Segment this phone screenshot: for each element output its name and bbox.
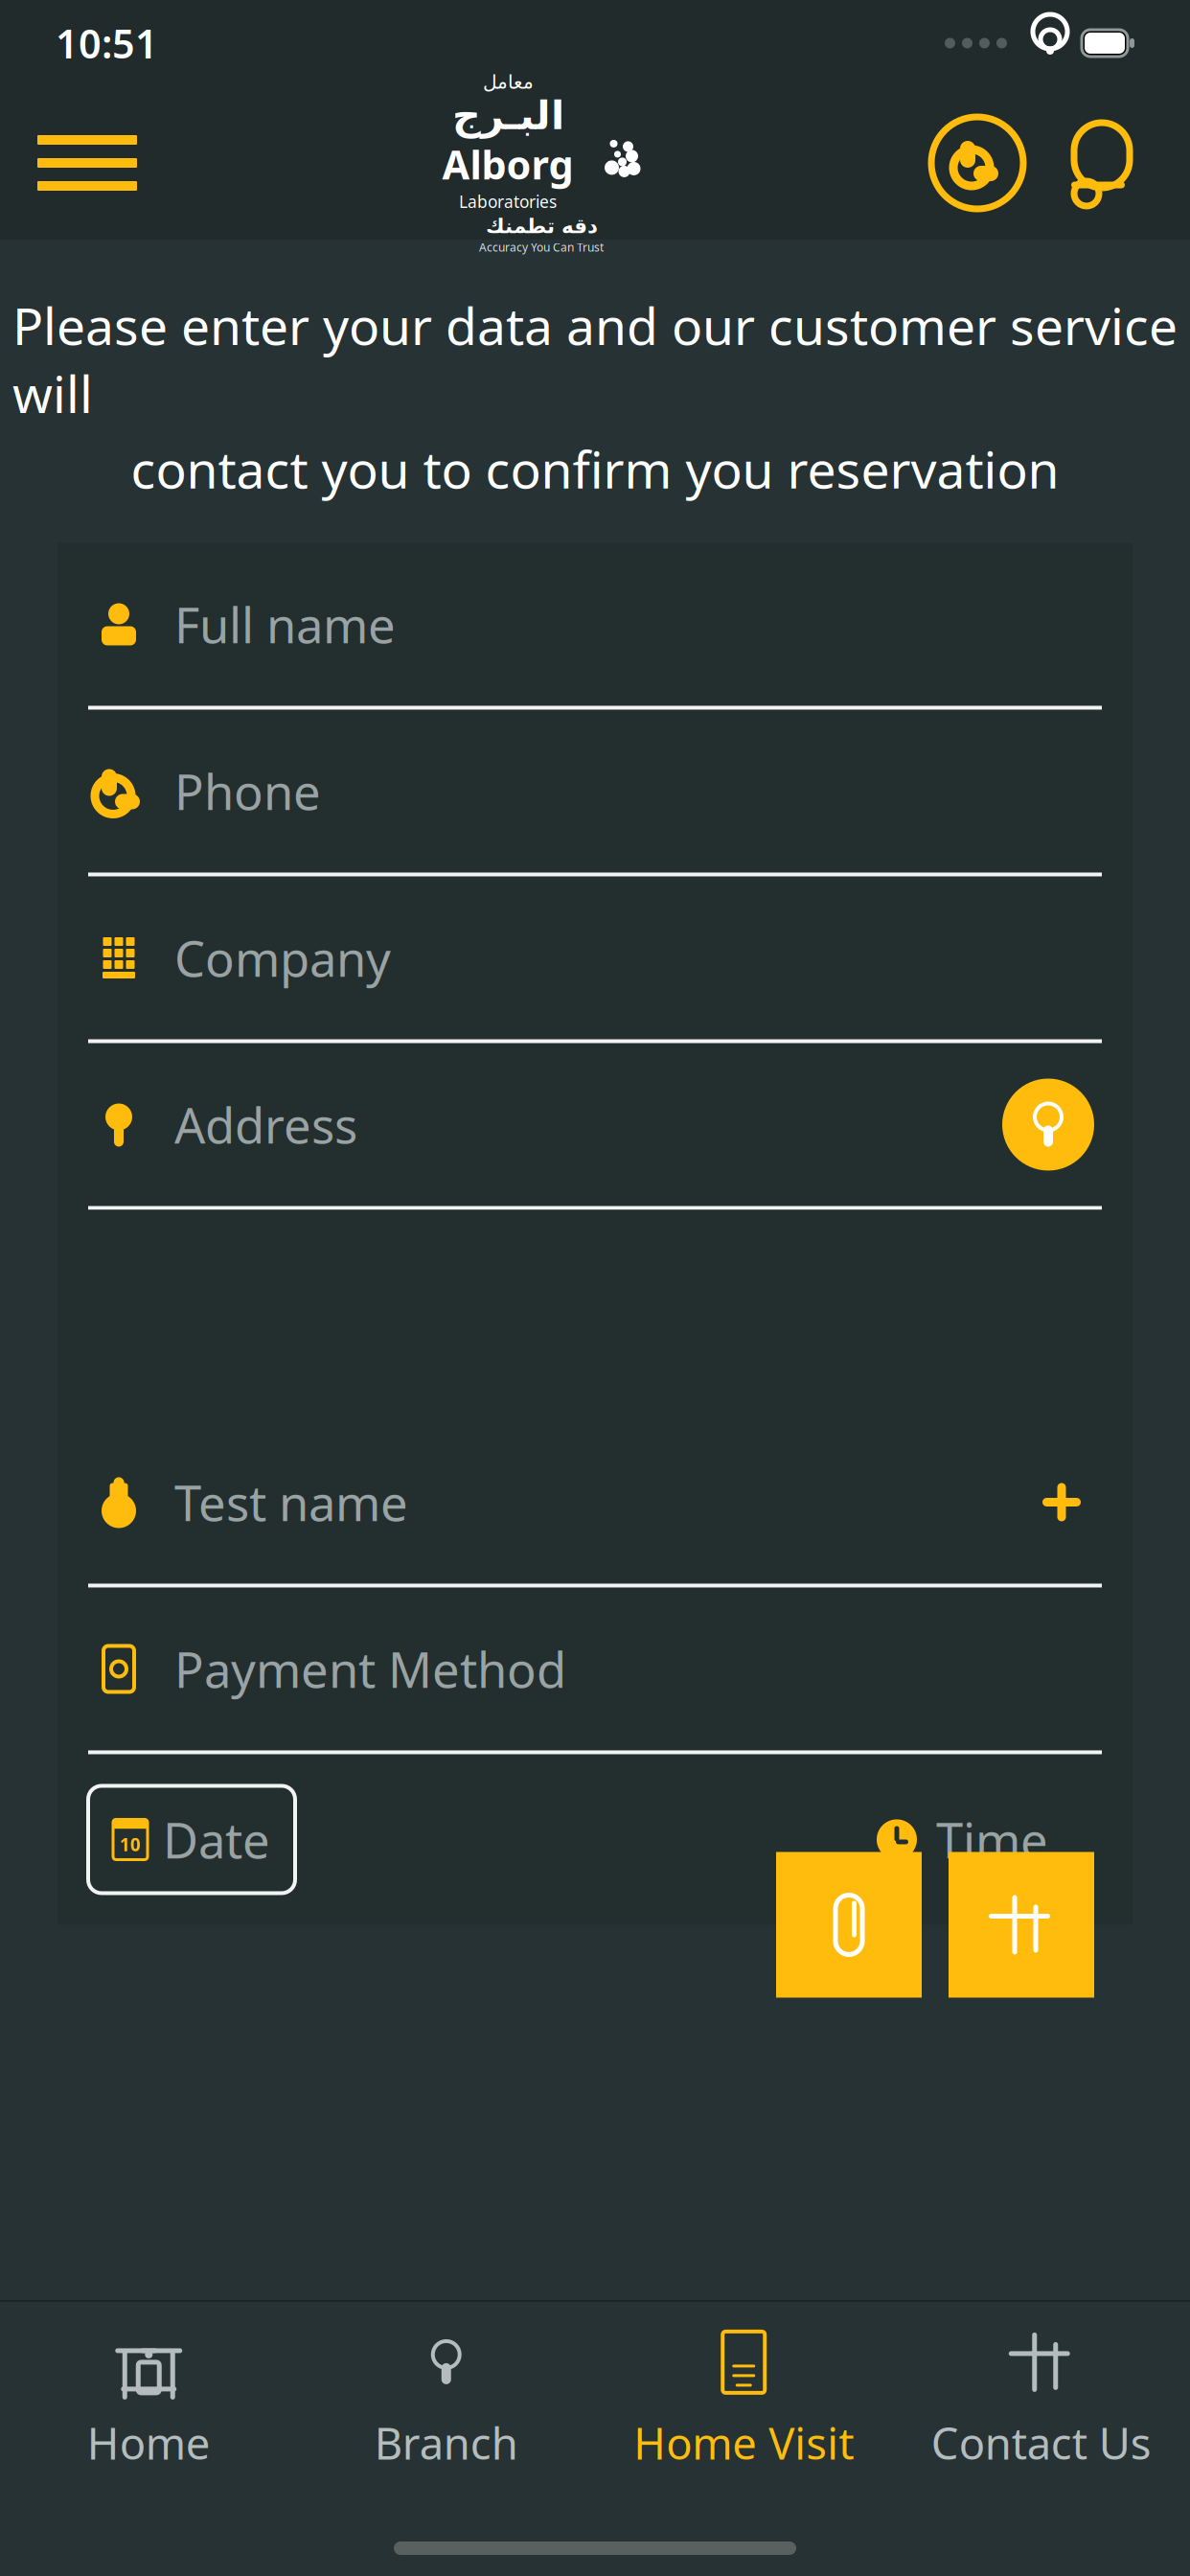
staticText: Test name [174, 1470, 408, 1534]
button[interactable]: Address [88, 1043, 995, 1206]
staticText: Accuracy You Can Trust [479, 239, 604, 255]
staticText: Alborg [442, 138, 573, 190]
staticText: Please enter your data and our customer … [12, 291, 1178, 427]
button[interactable]: Home Visit [595, 2315, 892, 2484]
button[interactable]: Add test [1021, 1462, 1102, 1542]
button[interactable]: Branch [297, 2315, 595, 2484]
staticText: Payment Method [174, 1637, 566, 1701]
button[interactable]: Attach file [776, 1852, 922, 1998]
staticText: Full name [174, 592, 396, 657]
button[interactable]: Notifications [1031, 117, 1148, 209]
staticText: Home [87, 2414, 211, 2472]
staticText: Home Visit [634, 2414, 854, 2472]
staticText: Contact Us [931, 2414, 1151, 2472]
button[interactable]: Time [873, 1786, 1048, 1893]
staticText: البـرج [452, 93, 564, 138]
staticText: Time [936, 1807, 1048, 1872]
button[interactable]: Payment Method [57, 1587, 1133, 1750]
button[interactable]: Company [57, 876, 1133, 1039]
button[interactable]: Call [924, 109, 1031, 217]
button[interactable]: Full name [57, 543, 1133, 706]
button[interactable]: Home [0, 2315, 297, 2484]
button[interactable]: Menu [15, 115, 159, 211]
staticText: Branch [374, 2414, 518, 2472]
staticText: Laboratories [459, 190, 557, 212]
staticText: معامل [482, 71, 533, 93]
staticText: 10:51 [56, 17, 158, 69]
staticText: دقه تطمنك [485, 214, 597, 238]
button[interactable]: Send [949, 1852, 1094, 1998]
button[interactable]: Contact Us [892, 2315, 1190, 2484]
button[interactable]: Phone [57, 710, 1133, 873]
staticText: Address [174, 1092, 357, 1157]
staticText: Date [163, 1807, 270, 1872]
staticText: contact you to confirm you reservation [131, 435, 1059, 503]
button[interactable]: 10 [88, 1786, 295, 1893]
button[interactable]: Use current location [995, 1071, 1102, 1178]
staticText: Company [174, 926, 391, 990]
button[interactable]: Test name [88, 1421, 1021, 1584]
staticText: Phone [174, 759, 321, 823]
staticText: 10 [120, 1832, 141, 1856]
